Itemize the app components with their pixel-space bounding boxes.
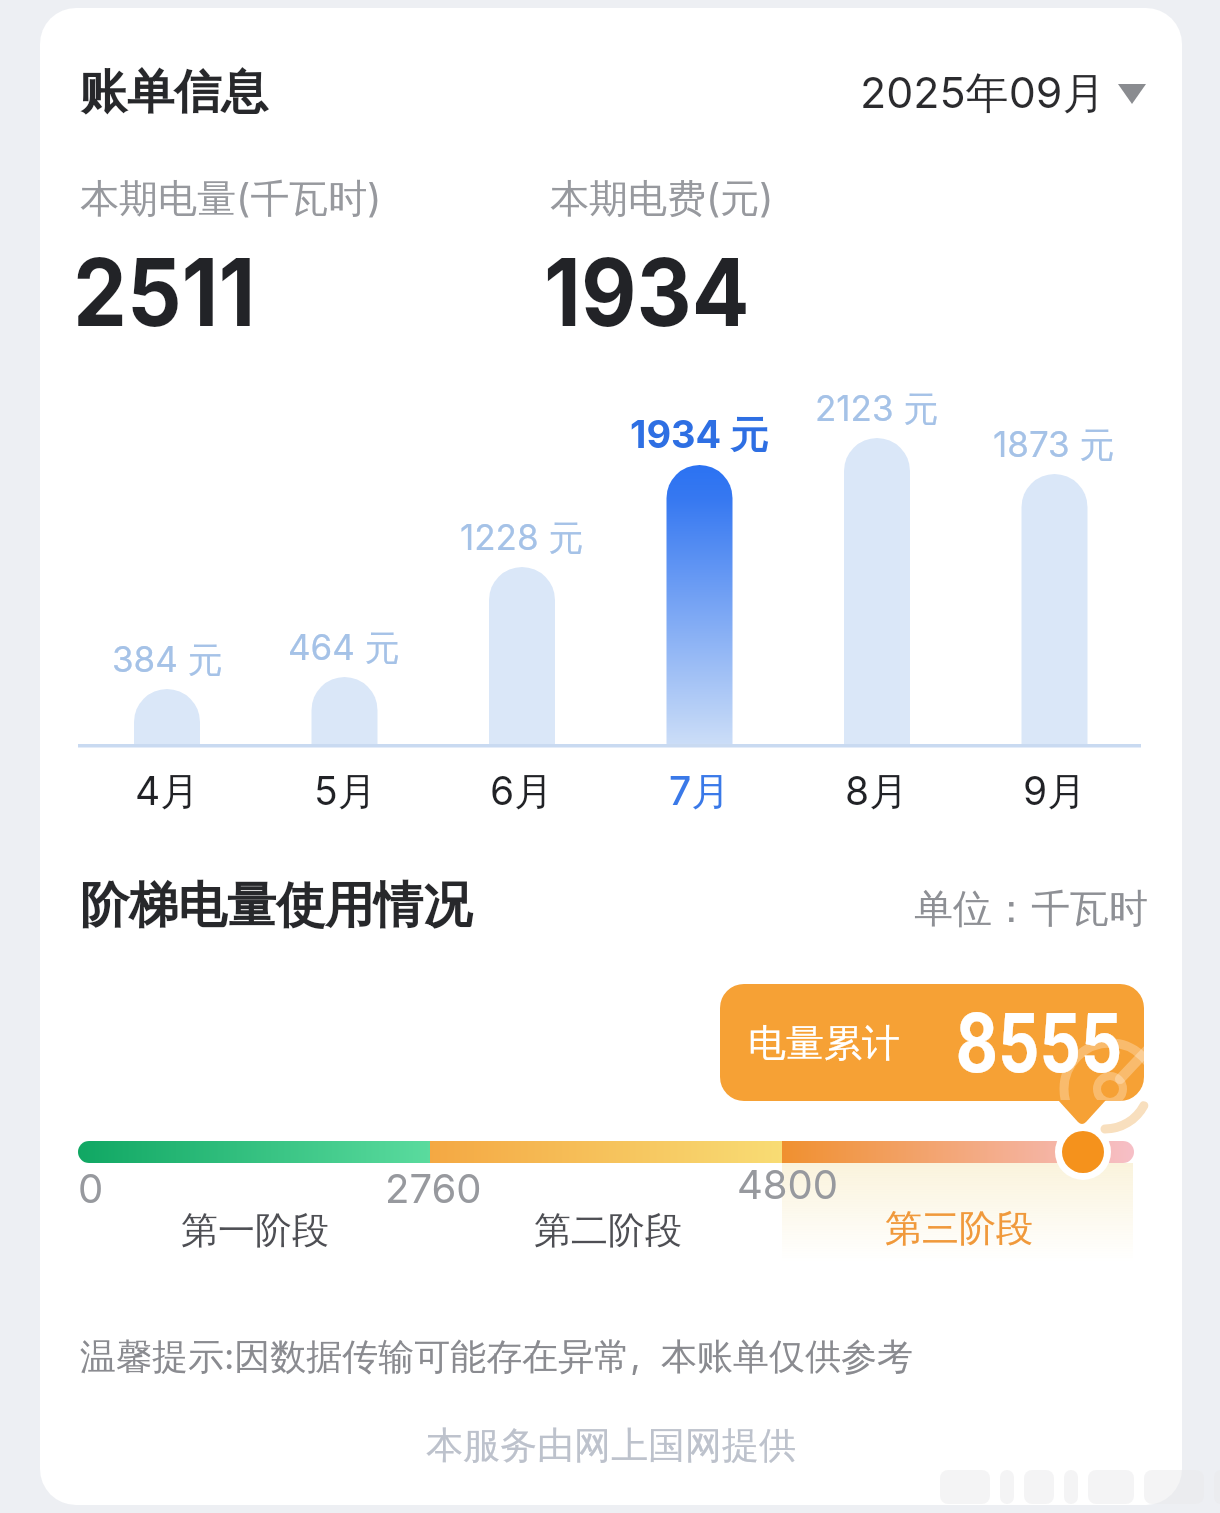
staticText: 1873 元 [993,423,1115,467]
staticText: 第三阶段 [885,1205,1033,1252]
staticText: 4800 [737,1160,839,1208]
button[interactable]: 8月 [817,751,937,831]
button[interactable]: 6月 [462,751,582,831]
staticText: 0 [78,1164,104,1212]
staticText: 384 元 [112,638,223,682]
button[interactable]: 电量累计 [720,984,1144,1101]
staticText: 本服务由网上国网提供 [426,1422,796,1469]
staticText: 1934 元 [630,411,769,459]
staticText: 电量累计 [748,1019,900,1067]
button[interactable]: 5月 [285,751,405,831]
staticText: 第二阶段 [534,1207,682,1254]
staticText: 2760 [385,1164,482,1212]
staticText: 本期电费(元) [550,174,774,223]
staticText: 2025年09月 [860,66,1106,120]
staticText: 2123 元 [815,387,939,431]
staticText: 1228 元 [460,516,584,560]
staticText: 8月 [845,767,909,816]
staticText: 温馨提示:因数据传输可能存在异常, 本账单仅供参考 [80,1334,913,1380]
button[interactable]: 7月 [640,751,760,831]
staticText: 第一阶段 [181,1207,329,1254]
button[interactable]: 4月 [107,751,227,831]
button[interactable]: 2025年09月 [860,66,1146,120]
staticText: 阶梯电量使用情况 [80,875,472,937]
staticText: 4月 [135,767,200,816]
staticText: 9月 [1023,767,1087,816]
staticText: 单位：千瓦时 [914,884,1148,933]
staticText: 2511 [73,235,256,349]
staticText: 6月 [490,767,554,816]
staticText: 1934 [544,235,750,349]
staticText: 8555 [956,994,1123,1092]
button[interactable]: 9月 [995,751,1115,831]
staticText: 7月 [669,767,731,816]
staticText: 本期电量(千瓦时) [80,174,382,223]
staticText: 账单信息 [80,63,268,122]
staticText: 464 元 [288,626,400,670]
staticText: 5月 [314,767,377,816]
